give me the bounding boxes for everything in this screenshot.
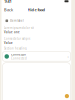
staticText: Connected: [11, 57, 27, 60]
button[interactable]: Send: [65, 94, 69, 98]
button[interactable]: Connector: [2, 52, 70, 61]
staticText: Hide food: [27, 7, 45, 12]
staticText: Back: [4, 7, 13, 12]
staticText: Section heading: [4, 47, 27, 50]
staticText: Item label: [10, 19, 24, 22]
staticText: Consectetur adipis: [4, 37, 30, 40]
staticText: Value one: [4, 30, 20, 34]
staticText: Lorem ipsum dolor sit: [4, 26, 34, 30]
staticText: 9:41: [4, 0, 11, 4]
button[interactable]: Back: [1, 6, 15, 14]
staticText: Connector: [11, 53, 26, 56]
staticText: Value: [4, 41, 13, 45]
